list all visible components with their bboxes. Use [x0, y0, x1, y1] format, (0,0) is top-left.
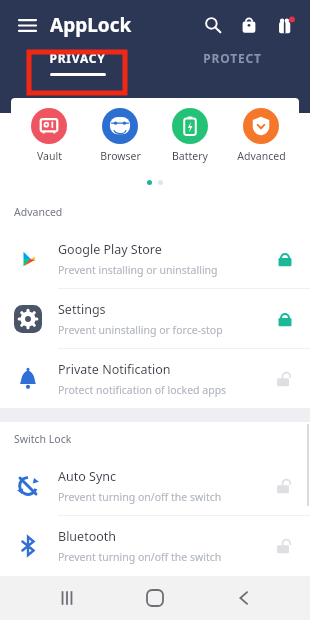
staticText: Switch Lock [14, 432, 72, 446]
staticText: Browser [100, 149, 141, 163]
staticText: Advanced [237, 149, 286, 163]
staticText: Private Notification [58, 361, 171, 378]
staticText: Bluetooth [58, 528, 117, 545]
button[interactable]: Advanced [229, 108, 293, 163]
staticText: Prevent uninstalling or force-stop [58, 323, 223, 337]
button[interactable]: Vault [17, 108, 81, 163]
staticText: Prevent turning on/off the switch [58, 550, 222, 564]
staticText: AppLock [50, 12, 132, 38]
button[interactable]: Gift [270, 10, 300, 40]
button[interactable]: Back [222, 576, 266, 620]
button[interactable]: Browser [88, 108, 152, 163]
staticText: Vault [37, 149, 62, 163]
button[interactable]: Search [198, 10, 228, 40]
staticText: Advanced [14, 205, 63, 219]
button[interactable]: Recents [45, 576, 89, 620]
button[interactable]: Auto Sync [0, 456, 310, 516]
staticText: Auto Sync [58, 468, 117, 485]
button[interactable]: Settings [0, 289, 310, 349]
button[interactable]: Menu [12, 10, 42, 40]
staticText: Prevent installing or uninstalling [58, 263, 218, 277]
button[interactable]: Home [133, 576, 177, 620]
staticText: Battery [172, 149, 208, 163]
staticText: Prevent turning on/off the switch [58, 490, 222, 504]
button[interactable]: Battery [158, 108, 222, 163]
button[interactable]: Store [234, 10, 264, 40]
button[interactable]: PRIVACY [0, 50, 155, 76]
staticText: PROTECT [203, 50, 262, 66]
button[interactable]: Bluetooth [0, 516, 310, 575]
button[interactable]: Private Notification [0, 349, 310, 408]
staticText: Settings [58, 301, 106, 318]
staticText: Protect notification of locked apps [58, 383, 227, 397]
button[interactable]: PROTECT [155, 50, 310, 66]
staticText: PRIVACY [49, 50, 106, 66]
staticText: Google Play Store [58, 241, 162, 258]
button[interactable]: Google Play Store [0, 229, 310, 289]
